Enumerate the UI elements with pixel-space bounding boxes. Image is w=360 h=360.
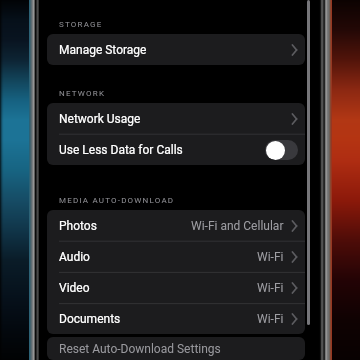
button[interactable]: Photos <box>47 210 305 241</box>
staticText: Video <box>59 281 90 295</box>
button[interactable]: Reset Auto-Download Settings <box>47 337 305 360</box>
staticText: MEDIA AUTO-DOWNLOAD <box>59 196 175 205</box>
staticText: Wi-Fi <box>257 281 284 295</box>
staticText: Manage Storage <box>59 43 147 57</box>
staticText: Wi-Fi <box>257 250 284 264</box>
staticText: Documents <box>59 312 121 326</box>
button[interactable]: Network Usage <box>47 103 305 134</box>
staticText: Photos <box>59 219 97 233</box>
staticText: NETWORK <box>59 89 106 98</box>
button[interactable]: Documents <box>47 303 305 334</box>
button[interactable]: Audio <box>47 241 305 272</box>
staticText: STORAGE <box>59 20 103 29</box>
staticText: Use Less Data for Calls <box>59 143 183 157</box>
button[interactable]: Use Less Data for Calls <box>47 134 305 165</box>
staticText: Wi-Fi <box>257 312 284 326</box>
staticText: Reset Auto-Download Settings <box>59 342 221 356</box>
staticText: Audio <box>59 250 90 264</box>
button[interactable]: Manage Storage <box>47 34 305 65</box>
staticText: Wi-Fi and Cellular <box>191 219 284 233</box>
staticText: Network Usage <box>59 112 141 126</box>
button[interactable]: Video <box>47 272 305 303</box>
button[interactable]: Use Less Data for Calls toggle <box>265 140 298 160</box>
